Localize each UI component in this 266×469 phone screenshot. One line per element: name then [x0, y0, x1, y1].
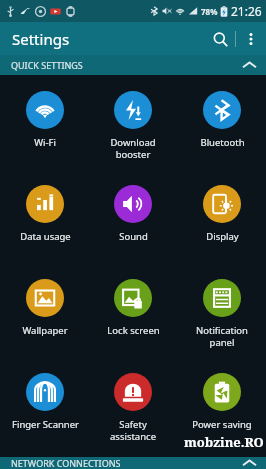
staticText: Download booster	[110, 136, 156, 161]
button[interactable]: Download booster	[89, 81, 177, 175]
staticText: Data usage	[20, 230, 71, 243]
button[interactable]: Display	[178, 175, 266, 269]
staticText: Wi-Fi	[34, 136, 56, 149]
staticText: QUICK SETTINGS	[11, 59, 83, 71]
staticText: Sound	[119, 230, 148, 243]
button[interactable]: QUICK SETTINGS	[0, 55, 266, 75]
button[interactable]: Finger Scanner	[1, 363, 89, 457]
staticText: mobzine.RO	[184, 433, 264, 451]
staticText: 78%	[201, 6, 218, 17]
staticText: Finger Scanner	[12, 418, 79, 431]
button[interactable]: Sound	[89, 175, 177, 269]
button[interactable]: Notification panel	[178, 269, 266, 363]
staticText: Bluetooth	[200, 136, 245, 149]
button[interactable]: Wi-Fi	[1, 81, 89, 175]
staticText: 21:26	[231, 3, 262, 19]
button[interactable]: Safety assistance	[89, 363, 177, 457]
button[interactable]: Data usage	[1, 175, 89, 269]
button[interactable]: Search	[205, 24, 235, 54]
button[interactable]: NETWORK CONNECTIONS	[0, 457, 266, 469]
staticText: Safety assistance	[110, 418, 156, 443]
button[interactable]: Wallpaper	[1, 269, 89, 363]
button[interactable]: Lock screen	[89, 269, 177, 363]
staticText: Power saving	[192, 418, 252, 431]
button[interactable]: More options	[236, 24, 266, 54]
button[interactable]: Bluetooth	[178, 81, 266, 175]
staticText: Notification panel	[196, 324, 248, 349]
staticText: Settings	[12, 29, 70, 49]
staticText: Wallpaper	[22, 324, 68, 337]
staticText: Lock screen	[107, 324, 160, 337]
staticText: Display	[206, 230, 239, 243]
button[interactable]: Power saving	[178, 363, 266, 457]
staticText: NETWORK CONNECTIONS	[11, 457, 121, 469]
